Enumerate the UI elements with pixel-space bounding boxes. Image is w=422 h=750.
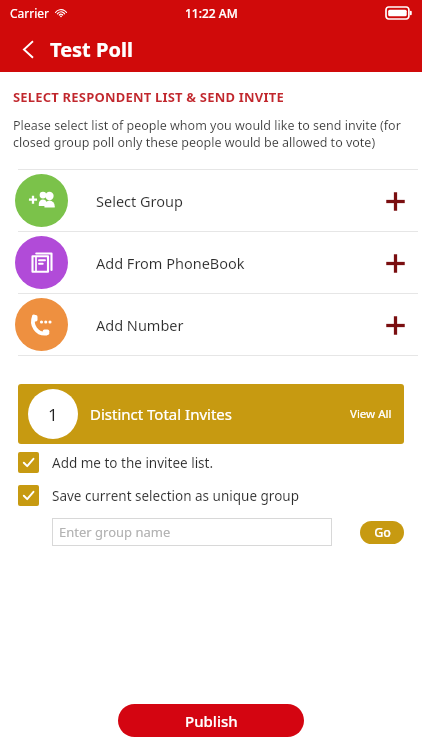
button[interactable]: Add Add Number (373, 303, 417, 347)
button[interactable]: Save current selection as unique group (0, 483, 422, 508)
button[interactable]: Add Number (0, 294, 422, 355)
button[interactable]: Add Select Group (373, 179, 417, 223)
button[interactable]: Select Group (0, 170, 422, 231)
staticText: SELECT RESPONDENT LIST & SEND INVITE (13, 88, 284, 106)
button[interactable]: Enter group name (52, 518, 332, 546)
staticText: Carrier (10, 5, 50, 21)
staticText: Add From PhoneBook (96, 253, 245, 273)
staticText: Go (374, 524, 391, 541)
staticText: Test Poll (50, 36, 133, 63)
button[interactable]: Add From PhoneBook (0, 232, 422, 293)
staticText: View All (350, 406, 392, 422)
staticText: Please select list of people whom you wo… (13, 117, 404, 151)
staticText: Add Number (96, 315, 184, 335)
button[interactable]: Go (360, 521, 404, 544)
staticText: Publish (185, 711, 238, 731)
staticText: Save current selection as unique group (52, 487, 299, 505)
button[interactable]: View All (344, 400, 398, 428)
staticText: 1 (48, 403, 58, 426)
staticText: 11:22 AM (185, 5, 238, 21)
staticText: Add me to the invitee list. (52, 454, 214, 472)
button[interactable]: Back (14, 35, 42, 63)
staticText: Select Group (96, 191, 183, 211)
button[interactable]: 1 (18, 384, 404, 444)
button[interactable]: Add Add From PhoneBook (373, 241, 417, 285)
button[interactable]: Publish (118, 704, 304, 737)
staticText: Enter group name (59, 523, 171, 541)
button[interactable]: Add me to the invitee list. (0, 450, 422, 475)
staticText: Distinct Total Invites (90, 404, 232, 424)
